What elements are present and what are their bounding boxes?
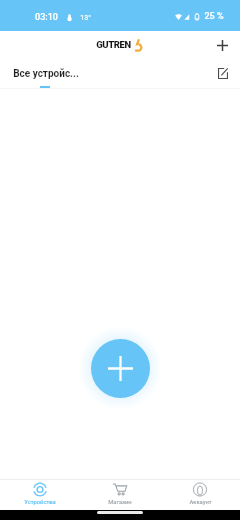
button[interactable]: Add [91,339,150,398]
staticText: Магазин [108,499,132,506]
staticText: Устройства [24,499,56,506]
staticText: Аккаунт [189,499,212,506]
staticText: GUTREN [96,39,131,50]
button[interactable]: Все устройс... [0,60,92,88]
button[interactable]: Магазин [80,480,160,510]
staticText: 25 % [204,11,224,22]
staticText: 13° [80,14,91,22]
button[interactable]: Устройства [0,480,80,510]
button[interactable]: Аккаунт [160,480,240,510]
staticText: 03:10 [35,12,58,23]
button[interactable]: Add device [209,32,236,59]
staticText: Все устройс... [13,68,79,80]
button[interactable]: Edit [209,60,236,87]
